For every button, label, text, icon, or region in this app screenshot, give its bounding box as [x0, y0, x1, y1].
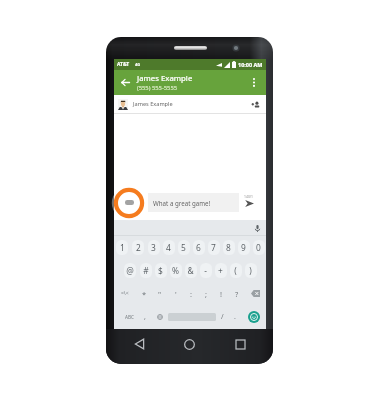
staticText: 4G — [135, 62, 141, 67]
staticText: - — [204, 265, 207, 276]
button[interactable]: Send — [241, 195, 258, 212]
button[interactable]: Emoji — [121, 194, 138, 211]
button[interactable]: / — [216, 305, 229, 329]
button[interactable]: , — [139, 305, 151, 329]
button[interactable]: 8 — [221, 236, 236, 259]
staticText: AT&T — [117, 61, 130, 68]
button[interactable]: + — [213, 259, 228, 282]
button[interactable]: % — [168, 259, 183, 282]
button[interactable]: 1 — [114, 236, 130, 259]
staticText: 2 — [136, 242, 141, 253]
staticText: , — [144, 312, 146, 322]
staticText: James Example — [133, 100, 173, 108]
staticText: 9 — [241, 242, 246, 253]
staticText: 1 — [120, 242, 125, 253]
staticText: # — [143, 265, 149, 276]
staticText: . — [234, 312, 236, 322]
button[interactable]: * — [136, 282, 152, 305]
button[interactable]: 4 — [161, 236, 176, 259]
button[interactable]: Change keyboard language — [153, 305, 167, 329]
button[interactable]: Add person — [249, 98, 262, 111]
button[interactable]: ABC — [118, 305, 140, 329]
button[interactable]: 0 — [251, 236, 266, 259]
staticText: 6 — [196, 242, 201, 253]
button[interactable]: : — [184, 282, 199, 305]
button[interactable]: 7 — [206, 236, 221, 259]
staticText: 4 — [166, 242, 171, 253]
button[interactable]: . — [229, 305, 241, 329]
staticText: ( — [234, 265, 237, 276]
button[interactable]: 2 — [130, 236, 146, 259]
button[interactable]: 9 — [236, 236, 251, 259]
staticText: ) — [249, 265, 252, 276]
button[interactable]: 3 — [146, 236, 161, 259]
button[interactable]: & — [183, 259, 198, 282]
staticText: & — [187, 265, 194, 276]
staticText: 3 — [151, 242, 156, 253]
staticText: 0 — [256, 242, 261, 253]
staticText: 7 — [211, 242, 216, 253]
staticText: : — [190, 289, 193, 299]
staticText: ABC — [125, 314, 134, 320]
button[interactable]: Voice input — [252, 223, 262, 233]
button[interactable]: $ — [153, 259, 168, 282]
button[interactable]: What a great game! — [148, 193, 239, 212]
staticText: ' — [175, 289, 177, 299]
button[interactable]: More options — [248, 70, 266, 95]
button[interactable]: ' — [168, 282, 184, 305]
staticText: * — [142, 289, 147, 299]
button[interactable]: - — [198, 259, 213, 282]
button[interactable]: " — [152, 282, 168, 305]
button[interactable]: 6 — [191, 236, 206, 259]
button[interactable]: ) — [243, 259, 258, 282]
staticText: % — [172, 265, 179, 276]
staticText: @ — [126, 265, 134, 276]
button[interactable]: James Example — [114, 95, 266, 113]
staticText: (555) 555-5555 — [137, 84, 178, 92]
staticText: 5 — [181, 242, 186, 253]
button[interactable]: 5 — [176, 236, 191, 259]
staticText: + — [218, 265, 223, 276]
staticText: 10:00 AM — [238, 61, 263, 68]
button[interactable]: # — [138, 259, 153, 282]
button[interactable]: Backspace — [244, 282, 266, 305]
button[interactable]: Back — [130, 335, 148, 353]
staticText: " — [158, 289, 162, 299]
staticText: 8 — [226, 242, 231, 253]
staticText: =\< — [121, 290, 129, 297]
staticText: 140/1 — [244, 194, 254, 199]
staticText: James Example — [137, 73, 193, 84]
button[interactable]: Recent apps — [231, 335, 249, 353]
button[interactable]: ! — [214, 282, 229, 305]
button[interactable]: Emoji keyboard — [248, 311, 260, 323]
button[interactable]: ( — [228, 259, 243, 282]
button[interactable]: Home — [180, 335, 198, 353]
staticText: $ — [158, 265, 163, 276]
staticText: ? — [235, 289, 239, 299]
staticText: ; — [205, 289, 208, 299]
staticText: ! — [220, 289, 223, 299]
button[interactable]: =\< — [114, 282, 136, 305]
staticText: What a great game! — [153, 199, 211, 207]
staticText: / — [221, 312, 224, 322]
button[interactable]: ? — [229, 282, 244, 305]
button[interactable]: Back — [114, 70, 137, 95]
button[interactable]: ; — [199, 282, 214, 305]
button[interactable]: @ — [122, 259, 138, 282]
